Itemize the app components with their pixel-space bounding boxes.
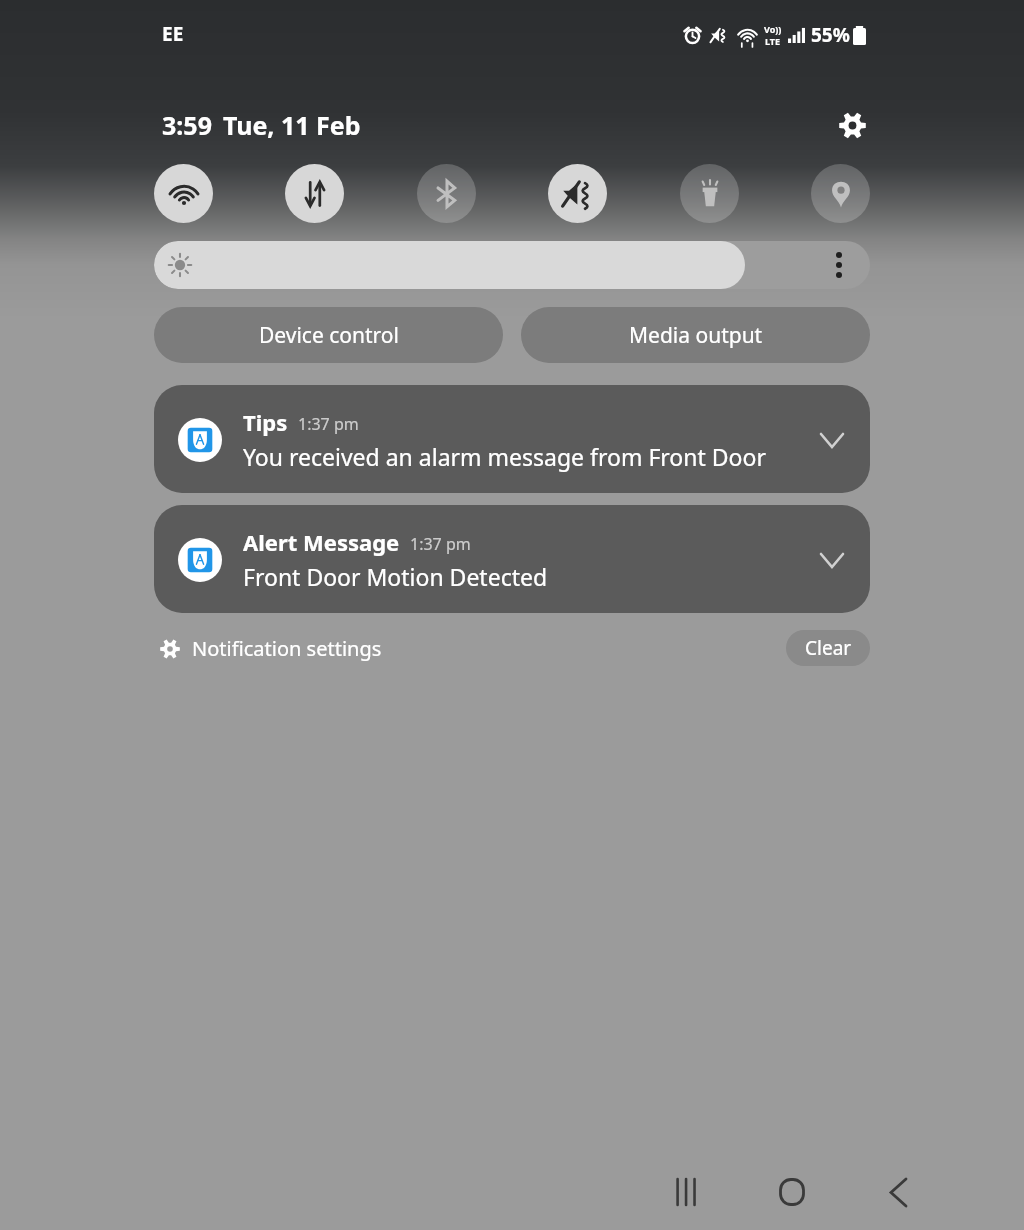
staticText: EE: [162, 21, 184, 47]
button[interactable]: Notification settings: [160, 635, 382, 662]
staticText: Tips: [243, 407, 288, 437]
button[interactable]: Device control: [154, 307, 503, 363]
button[interactable]: Recents: [650, 1156, 722, 1228]
button[interactable]: Home: [756, 1156, 828, 1228]
button[interactable]: Back: [862, 1156, 934, 1228]
button[interactable]: Expand notification: [814, 542, 850, 578]
staticText: Media output: [629, 321, 763, 350]
staticText: 3:59: [162, 108, 212, 142]
staticText: 1:37 pm: [410, 533, 471, 555]
button[interactable]: Brightness options: [154, 241, 870, 289]
button[interactable]: Brightness options: [824, 250, 854, 280]
button[interactable]: Bluetooth: [417, 164, 476, 223]
button[interactable]: Settings: [832, 105, 872, 145]
button[interactable]: Alert Message: [154, 505, 870, 613]
staticText: Tue, 11 Feb: [223, 108, 361, 142]
staticText: Clear: [805, 635, 852, 661]
staticText: Notification settings: [192, 635, 382, 662]
button[interactable]: Tips: [154, 385, 870, 493]
button[interactable]: Vibrate: [548, 164, 607, 223]
staticText: 1:37 pm: [298, 413, 359, 435]
staticText: LTE: [765, 35, 781, 47]
button[interactable]: Flashlight: [680, 164, 739, 223]
button[interactable]: Location: [811, 164, 870, 223]
button[interactable]: Mobile data: [285, 164, 344, 223]
staticText: Vo)): [764, 23, 782, 35]
staticText: Device control: [259, 321, 399, 350]
button[interactable]: Media output: [521, 307, 870, 363]
button[interactable]: Clear: [786, 630, 870, 666]
staticText: You received an alarm message from Front…: [243, 441, 766, 472]
button[interactable]: Wi-Fi: [154, 164, 213, 223]
button[interactable]: Expand notification: [814, 422, 850, 458]
staticText: Alert Message: [243, 527, 400, 557]
staticText: Front Door Motion Detected: [243, 561, 548, 592]
staticText: 55%: [811, 22, 850, 48]
